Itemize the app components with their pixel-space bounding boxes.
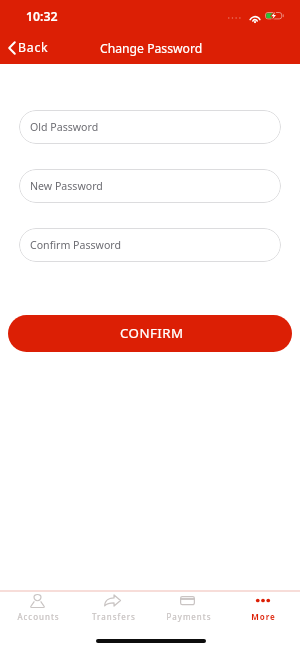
button[interactable]: Transfers (75, 592, 150, 622)
staticText: Change Password (100, 40, 203, 57)
staticText: Accounts (17, 611, 60, 622)
button[interactable]: Confirm Password (19, 228, 281, 262)
staticText: Confirm Password (30, 238, 121, 252)
staticText: More (251, 611, 276, 622)
button[interactable]: New Password (19, 169, 281, 203)
button[interactable]: Old Password (19, 110, 281, 144)
staticText: 10:32 (26, 8, 58, 25)
button[interactable]: Accounts (0, 592, 75, 622)
staticText: Payments (166, 611, 212, 622)
staticText: Transfers (92, 611, 136, 622)
staticText: CONFIRM (120, 324, 184, 342)
staticText: Back (18, 39, 49, 56)
button[interactable]: More (225, 592, 300, 622)
button[interactable]: CONFIRM (8, 315, 292, 352)
button[interactable]: Back (0, 35, 59, 62)
button[interactable]: Payments (150, 592, 225, 622)
staticText: Old Password (30, 120, 99, 134)
staticText: New Password (30, 179, 103, 193)
